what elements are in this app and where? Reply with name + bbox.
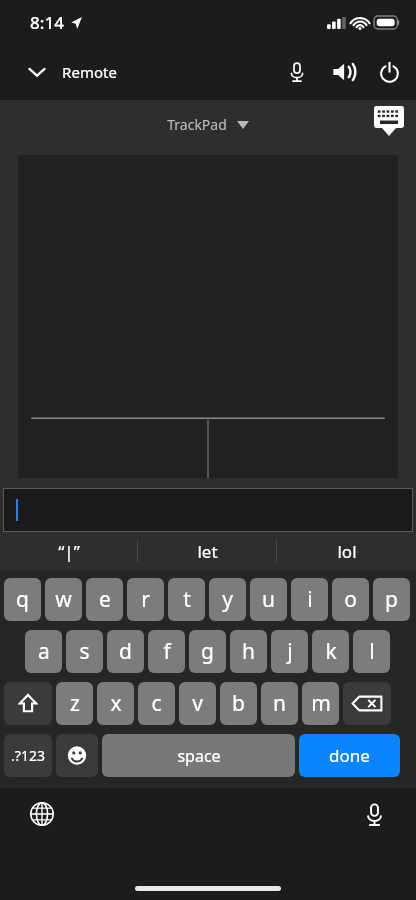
button[interactable]: h <box>230 630 267 673</box>
staticText: let <box>197 540 218 563</box>
button[interactable]: x <box>97 682 134 725</box>
staticText: done <box>329 744 370 767</box>
button[interactable]: p <box>373 578 410 621</box>
button[interactable]: j <box>271 630 308 673</box>
staticText: space <box>177 745 221 767</box>
staticText: l <box>369 637 375 666</box>
staticText: y <box>222 585 233 614</box>
button[interactable]: lol <box>277 532 416 570</box>
button[interactable]: e <box>86 578 123 621</box>
button[interactable]: Emoji <box>56 734 98 777</box>
staticText: g <box>201 637 214 666</box>
staticText: t <box>183 585 191 614</box>
staticText: s <box>79 637 90 666</box>
button[interactable]: m <box>302 682 339 725</box>
staticText: m <box>311 689 331 718</box>
button[interactable]: f <box>148 630 185 673</box>
staticText: q <box>16 585 29 614</box>
button[interactable]: k <box>312 630 349 673</box>
button[interactable]: .?123 <box>4 734 52 777</box>
button[interactable]: n <box>261 682 298 725</box>
staticText: z <box>70 689 80 718</box>
staticText: x <box>110 689 122 718</box>
staticText: TrackPad <box>167 115 227 134</box>
button[interactable]: i <box>291 578 328 621</box>
staticText: Remote <box>62 62 117 82</box>
staticText: 8:14 <box>30 11 64 34</box>
button[interactable]: Hide keyboard <box>374 106 404 136</box>
button[interactable]: v <box>179 682 216 725</box>
staticText: o <box>344 585 357 614</box>
staticText: b <box>232 689 245 718</box>
staticText: .?123 <box>11 746 45 765</box>
button[interactable]: Power <box>366 49 412 95</box>
button[interactable]: Remote <box>0 54 129 90</box>
button[interactable]: done <box>299 734 400 777</box>
staticText: n <box>273 689 286 718</box>
staticText: c <box>151 689 162 718</box>
button[interactable]: y <box>209 578 246 621</box>
staticText: r <box>141 585 150 614</box>
button[interactable]: space <box>102 734 295 777</box>
button[interactable]: r <box>127 578 164 621</box>
staticText: h <box>242 637 255 666</box>
button[interactable]: d <box>107 630 144 673</box>
staticText: k <box>325 637 337 666</box>
button[interactable]: w <box>45 578 82 621</box>
button[interactable]: g <box>189 630 226 673</box>
button[interactable]: Voice input <box>274 49 320 95</box>
button[interactable]: Backspace <box>343 682 391 725</box>
button[interactable]: Text input <box>3 488 413 532</box>
staticText: d <box>119 637 132 666</box>
button[interactable]: q <box>4 578 41 621</box>
staticText: v <box>192 689 203 718</box>
button[interactable]: z <box>56 682 93 725</box>
staticText: lol <box>337 540 357 563</box>
button[interactable]: o <box>332 578 369 621</box>
button[interactable]: TrackPad <box>157 109 259 140</box>
staticText: j <box>287 637 293 666</box>
button[interactable]: Volume <box>320 49 366 95</box>
button[interactable]: l <box>353 630 390 673</box>
staticText: e <box>99 585 111 614</box>
staticText: a <box>38 637 50 666</box>
staticText: p <box>385 585 398 614</box>
button[interactable]: b <box>220 682 257 725</box>
button[interactable]: a <box>25 630 62 673</box>
button[interactable]: let <box>138 532 277 570</box>
button[interactable]: “|” <box>0 532 138 570</box>
button[interactable]: Trackpad <box>18 155 398 478</box>
staticText: i <box>307 585 313 614</box>
staticText: u <box>262 585 275 614</box>
button[interactable]: c <box>138 682 175 725</box>
staticText: w <box>55 585 72 614</box>
button[interactable]: u <box>250 578 287 621</box>
button[interactable]: t <box>168 578 205 621</box>
button[interactable]: Shift <box>4 682 52 725</box>
button[interactable]: Change language <box>20 792 64 836</box>
staticText: “|” <box>58 540 80 563</box>
staticText: f <box>163 637 171 666</box>
button[interactable]: s <box>66 630 103 673</box>
button[interactable]: Dictate <box>352 792 396 836</box>
